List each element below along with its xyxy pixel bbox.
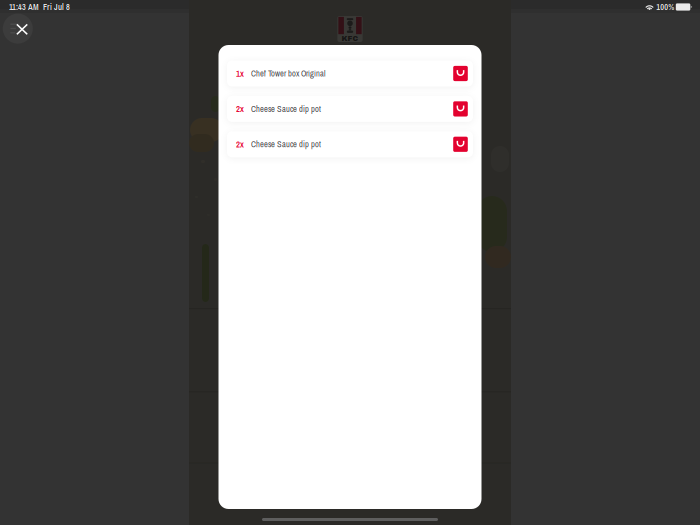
- staticText: Chef Tower box Original: [251, 68, 326, 79]
- staticText: Fri Jul 8: [43, 1, 70, 12]
- staticText: Cheese Sauce dip pot: [251, 103, 321, 114]
- staticText: KFC: [341, 35, 358, 43]
- button[interactable]: 1x: [227, 60, 473, 86]
- staticText: 2x: [236, 138, 244, 150]
- staticText: 100%: [656, 1, 674, 12]
- staticText: 11:43 AM: [9, 1, 39, 12]
- staticText: 1x: [236, 68, 244, 79]
- staticText: 2x: [236, 103, 244, 115]
- button[interactable]: 2x: [227, 96, 473, 122]
- staticText: Cheese Sauce dip pot: [251, 139, 321, 150]
- button[interactable]: 2x: [227, 131, 473, 157]
- button[interactable]: Close: [3, 14, 33, 44]
